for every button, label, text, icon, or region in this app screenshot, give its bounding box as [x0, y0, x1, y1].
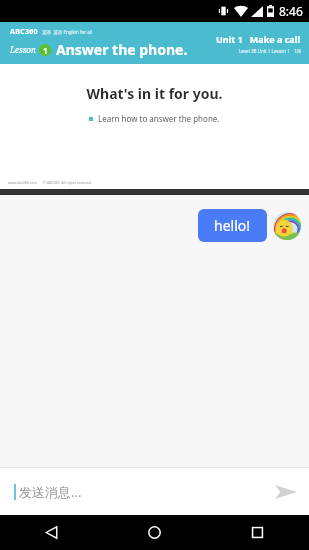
staticText: Learn how to answer the phone. — [98, 113, 220, 124]
staticText: ABC360 — [10, 27, 38, 37]
button[interactable]: Back — [0, 515, 103, 550]
button[interactable]: Recent apps — [206, 515, 309, 550]
staticText: 发送消息... — [19, 483, 82, 501]
staticText: 英语 英语 English for all — [42, 29, 93, 35]
button[interactable]: ABC360 — [0, 22, 309, 64]
staticText: Unit 1 Make a call — [216, 33, 301, 45]
staticText: www.abc360.com — [8, 180, 37, 185]
staticText: 8:46 — [279, 3, 303, 19]
button[interactable]: hello! — [198, 209, 267, 242]
staticText: 1/8 — [294, 48, 301, 54]
staticText: What's in it for you. — [86, 84, 223, 103]
staticText: Answer the phone. — [56, 40, 188, 59]
button[interactable]: Send — [263, 469, 309, 515]
button[interactable]: User avatar — [273, 212, 301, 240]
button[interactable]: 发送消息... — [0, 483, 263, 501]
button[interactable]: Home — [103, 515, 206, 550]
staticText: hello! — [214, 216, 251, 235]
staticText: 1 — [43, 45, 48, 56]
staticText: Level 3B Unit 1 Lesson 1 — [239, 48, 290, 54]
staticText: © ABC360 All rights reserved — [43, 180, 92, 185]
staticText: Lesson — [10, 44, 36, 55]
